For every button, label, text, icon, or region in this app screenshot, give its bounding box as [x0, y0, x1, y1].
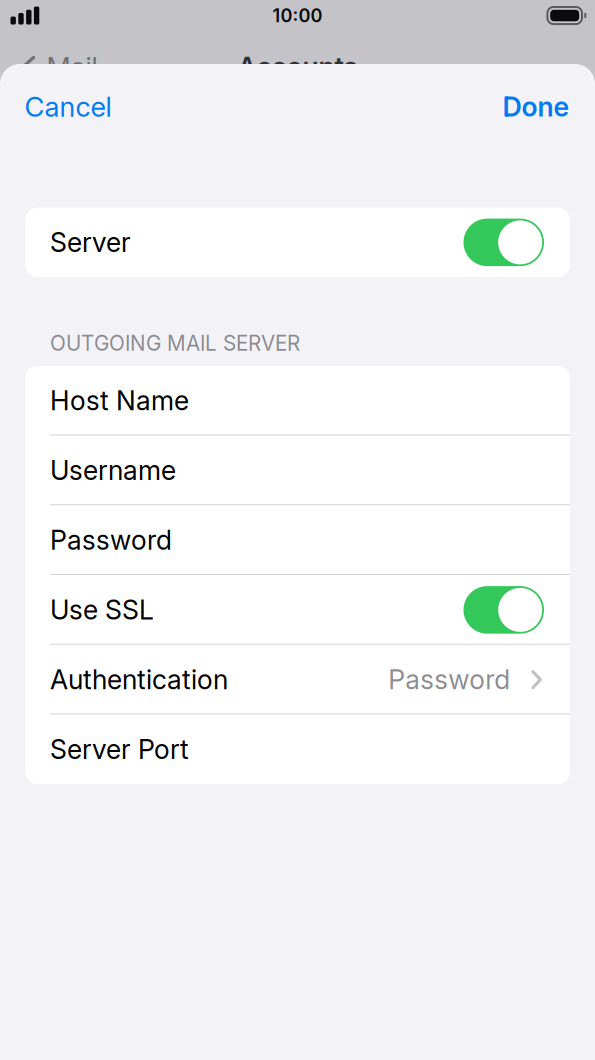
button[interactable]: Host Name	[25, 366, 570, 436]
staticText: Server	[50, 226, 131, 258]
button[interactable]: Server Port	[25, 714, 570, 784]
staticText: Done	[502, 90, 569, 123]
button[interactable]: Done	[478, 75, 595, 137]
staticText: OUTGOING MAIL SERVER	[50, 331, 300, 356]
button[interactable]: Use SSL	[25, 575, 570, 645]
staticText: 10:00	[272, 5, 322, 26]
staticText: Username	[50, 454, 176, 486]
button[interactable]: Password	[25, 505, 570, 575]
button[interactable]: Cancel	[0, 75, 136, 137]
button[interactable]: Server	[25, 207, 570, 277]
staticText: Use SSL	[50, 594, 154, 626]
staticText: Mail	[46, 50, 97, 83]
staticText: Cancel	[24, 90, 111, 123]
staticText: Password	[50, 524, 172, 556]
button[interactable]: Authentication	[25, 645, 570, 715]
button[interactable]: Username	[25, 435, 570, 505]
staticText: Host Name	[50, 384, 189, 417]
staticText: Password	[388, 663, 510, 696]
staticText: Server Port	[50, 733, 189, 765]
staticText: Accounts	[237, 51, 357, 83]
staticText: Authentication	[50, 663, 228, 696]
